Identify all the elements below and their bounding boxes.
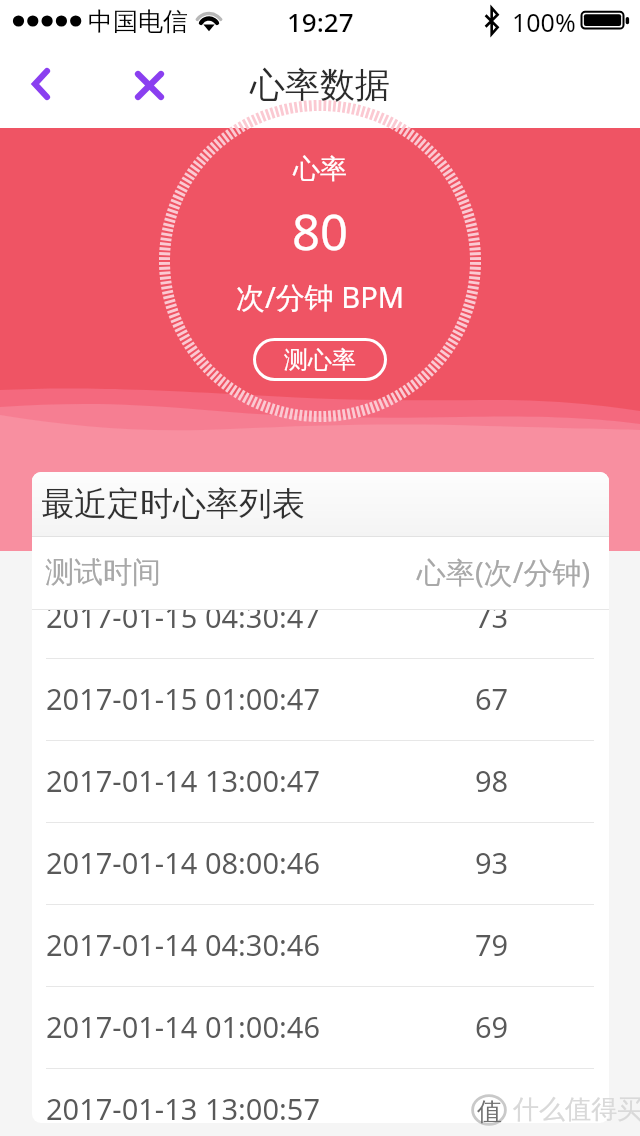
staticText: 中国电信: [88, 6, 188, 37]
button[interactable]: 2017-01-14 08:00:46: [32, 823, 609, 905]
staticText: 80: [292, 198, 349, 265]
staticText: 次/分钟 BPM: [236, 277, 405, 317]
staticText: 心率数据: [250, 63, 390, 107]
staticText: 心率: [293, 152, 347, 186]
staticText: 2017-01-14 08:00:46: [46, 843, 320, 882]
staticText: 2017-01-14 01:00:46: [46, 1007, 320, 1046]
staticText: 98: [475, 761, 509, 800]
staticText: 测心率: [284, 345, 356, 375]
staticText: 什么值得买: [513, 1093, 640, 1126]
staticText: 2017-01-14 13:00:47: [46, 761, 320, 800]
staticText: 测试时间: [45, 554, 161, 591]
staticText: 2017-01-15 01:00:47: [46, 679, 320, 718]
button[interactable]: 测心率: [253, 338, 387, 381]
staticText: 2017-01-14 04:30:46: [46, 925, 320, 964]
staticText: 93: [475, 843, 509, 882]
staticText: 心率(次/分钟): [417, 552, 591, 592]
button[interactable]: 2017-01-14 04:30:46: [32, 905, 609, 987]
button[interactable]: 2017-01-13 13:00:57: [32, 1069, 609, 1123]
staticText: 67: [475, 679, 509, 718]
staticText: 19:27: [287, 4, 354, 39]
staticText: 69: [475, 1007, 509, 1046]
staticText: 值: [477, 1096, 502, 1127]
staticText: 2017-01-15 04:30:47: [46, 610, 320, 636]
staticText: 100%: [512, 5, 576, 39]
button[interactable]: Close: [118, 48, 178, 108]
button[interactable]: Back: [11, 48, 71, 108]
button[interactable]: 2017-01-14 13:00:47: [32, 741, 609, 823]
button[interactable]: 2017-01-15 04:30:47: [32, 610, 609, 659]
staticText: 最近定时心率列表: [41, 483, 305, 525]
button[interactable]: 2017-01-15 01:00:47: [32, 659, 609, 741]
staticText: 79: [475, 925, 509, 964]
staticText: 2017-01-13 13:00:57: [46, 1089, 320, 1123]
button[interactable]: 2017-01-14 01:00:46: [32, 987, 609, 1069]
staticText: 73: [475, 610, 509, 636]
